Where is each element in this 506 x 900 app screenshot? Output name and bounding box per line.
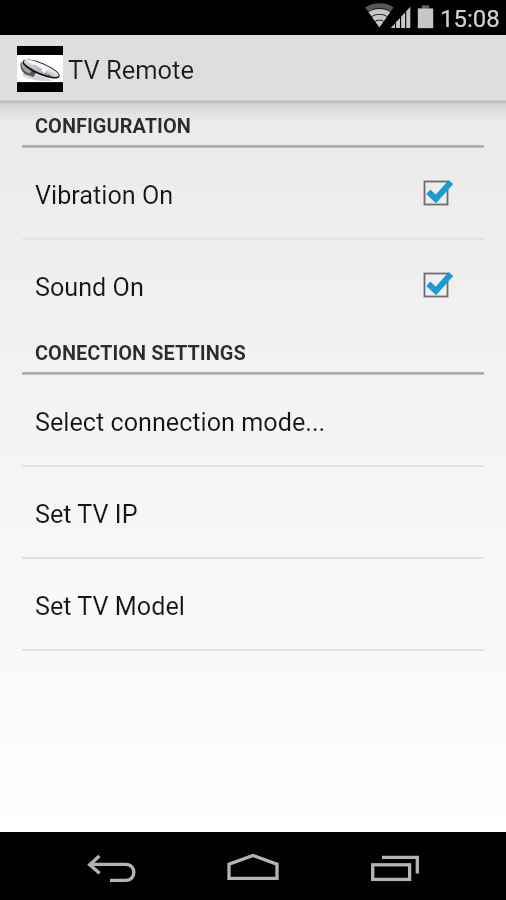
button[interactable]: Set TV IP [0, 467, 506, 557]
staticText: Sound On [35, 273, 422, 303]
button[interactable]: Home [163, 832, 344, 900]
button[interactable]: Select connection mode... [0, 375, 506, 465]
staticText: Vibration On [35, 181, 422, 211]
staticText: CONECTION SETTINGS [35, 341, 246, 364]
staticText: 15:08 [440, 5, 500, 33]
button[interactable]: Vibration On [0, 148, 506, 238]
staticText: Select connection mode... [35, 408, 326, 438]
staticText: Set TV IP [35, 500, 138, 530]
button[interactable]: Recent apps [325, 832, 506, 900]
staticText: TV Remote [68, 55, 194, 85]
button[interactable]: Sound On [0, 240, 506, 330]
staticText: Set TV Model [35, 592, 185, 622]
staticText: CONFIGURATION [35, 114, 191, 137]
button[interactable]: Back [0, 832, 181, 900]
button[interactable]: Set TV Model [0, 559, 506, 649]
